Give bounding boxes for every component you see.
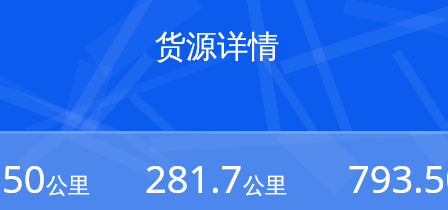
button[interactable]: 50 bbox=[2, 152, 90, 204]
staticText: 公里 bbox=[46, 172, 90, 200]
staticText: 公里 bbox=[243, 172, 287, 200]
button[interactable]: 281.7 bbox=[145, 152, 287, 204]
staticText: 281.7 bbox=[145, 152, 243, 204]
staticText: 50 bbox=[2, 152, 46, 204]
staticText: 793.50 bbox=[348, 152, 448, 204]
button[interactable]: 793.50 bbox=[348, 152, 448, 204]
staticText: 货源详情 bbox=[155, 27, 279, 66]
